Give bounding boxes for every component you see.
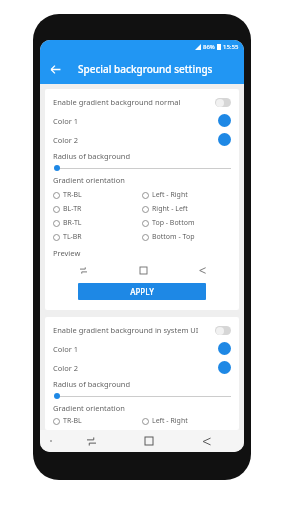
staticText: Radius of background (53, 151, 131, 161)
button[interactable]: Home (137, 264, 149, 276)
button[interactable]: Back (40, 54, 70, 84)
staticText: 15:55 (223, 43, 239, 51)
staticText: Enable gradient background in system UI (53, 325, 215, 335)
staticText: Radius of background (53, 379, 131, 389)
button[interactable]: TR-BL (53, 416, 142, 426)
staticText: TR-BL (63, 190, 82, 200)
button[interactable]: Left - Right (142, 416, 231, 426)
staticText: Preview (53, 248, 81, 258)
button[interactable]: Back (197, 432, 215, 450)
staticText: Color 1 (53, 116, 218, 126)
staticText: Special background settings (78, 62, 213, 76)
button[interactable]: TR-BL (53, 188, 142, 202)
staticText: Color 1 (53, 344, 218, 354)
staticText: BL-TR (63, 204, 82, 214)
button[interactable]: Color 2 (53, 358, 231, 377)
staticText: 86% (203, 43, 215, 51)
staticText: Enable gradient background normal (53, 97, 215, 107)
staticText: Color 2 (53, 363, 218, 373)
staticText: Bottom - Top (152, 232, 195, 242)
staticText: BR-TL (63, 218, 82, 228)
button[interactable] (53, 163, 231, 173)
button[interactable]: Enable gradient background in system UI (53, 321, 231, 339)
button[interactable]: Top - Bottom (142, 216, 231, 230)
button[interactable]: Bottom - Top (142, 230, 231, 244)
button[interactable]: APPLY (78, 283, 206, 300)
staticText: Gradient orientation (53, 175, 125, 185)
button[interactable]: Color 1 (53, 111, 231, 130)
staticText: TL-BR (63, 232, 82, 242)
button[interactable]: Enable gradient background normal (53, 93, 231, 111)
staticText: Left - Right (152, 416, 188, 426)
staticText: APPLY (130, 286, 154, 297)
staticText: Color 2 (53, 135, 218, 145)
button[interactable] (53, 391, 231, 401)
button[interactable]: Color 2 (53, 130, 231, 149)
button[interactable]: Back (196, 264, 208, 276)
button[interactable]: BR-TL (53, 216, 142, 230)
staticText: Right - Left (152, 204, 188, 214)
button[interactable]: Right - Left (142, 202, 231, 216)
button[interactable]: Left - Right (142, 188, 231, 202)
staticText: Top - Bottom (152, 218, 195, 228)
button[interactable]: Recents (77, 264, 89, 276)
button[interactable]: Home (140, 432, 158, 450)
button[interactable]: Color 1 (53, 339, 231, 358)
staticText: Left - Right (152, 190, 188, 200)
staticText: Gradient orientation (53, 403, 125, 413)
button[interactable]: BL-TR (53, 202, 142, 216)
button[interactable]: Recents (82, 432, 100, 450)
button[interactable]: TL-BR (53, 230, 142, 244)
staticText: TR-BL (63, 416, 82, 426)
